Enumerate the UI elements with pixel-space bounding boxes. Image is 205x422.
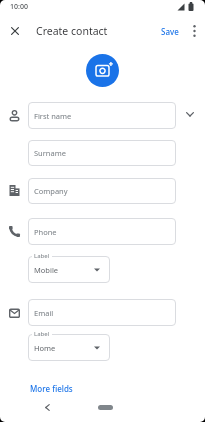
- staticText: Label: [34, 330, 50, 338]
- button[interactable]: [98, 405, 113, 410]
- button[interactable]: Home: [28, 334, 110, 361]
- staticText: Save: [161, 26, 179, 37]
- button[interactable]: More fields: [26, 379, 77, 398]
- staticText: 10:00: [10, 2, 28, 12]
- staticText: Create contact: [36, 24, 108, 38]
- button[interactable]: First name: [28, 102, 176, 129]
- button[interactable]: Phone: [28, 218, 176, 245]
- button[interactable]: [6, 22, 23, 39]
- staticText: Email: [34, 308, 54, 318]
- staticText: More fields: [30, 383, 73, 394]
- staticText: Label: [34, 252, 50, 260]
- button[interactable]: [86, 54, 119, 87]
- staticText: Company: [34, 186, 68, 196]
- button[interactable]: Save: [157, 22, 183, 41]
- button[interactable]: Surname: [28, 140, 176, 166]
- staticText: First name: [34, 111, 72, 121]
- staticText: Mobile: [34, 265, 59, 275]
- staticText: Home: [34, 343, 56, 353]
- staticText: Phone: [34, 227, 57, 237]
- staticText: Surname: [34, 148, 66, 158]
- button[interactable]: [187, 22, 201, 39]
- button[interactable]: [40, 400, 55, 415]
- button[interactable]: Email: [28, 299, 176, 326]
- button[interactable]: Company: [28, 178, 176, 204]
- button[interactable]: [182, 107, 197, 122]
- button[interactable]: Mobile: [28, 256, 110, 283]
